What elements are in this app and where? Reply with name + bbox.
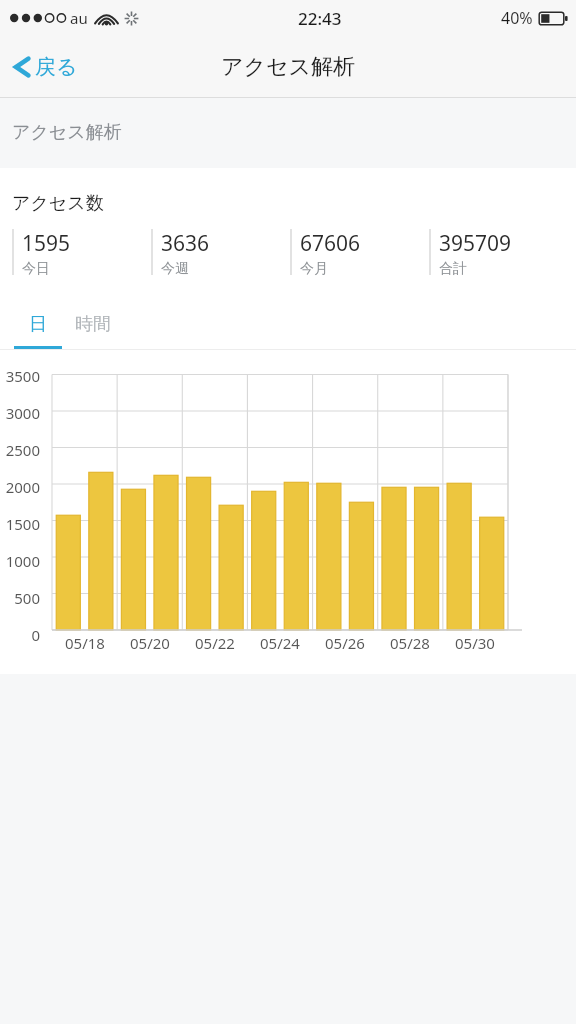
button[interactable]: 戻る xyxy=(8,46,82,88)
staticText: 500 xyxy=(0,588,40,608)
staticText: 3500 xyxy=(0,366,40,386)
staticText: 2000 xyxy=(0,477,40,497)
staticText: 日 xyxy=(29,313,47,336)
staticText: アクセス解析 xyxy=(221,53,356,81)
staticText: 1595 xyxy=(22,229,71,258)
staticText: 2500 xyxy=(0,440,40,460)
staticText: 05/22 xyxy=(195,633,235,653)
staticText: 05/30 xyxy=(455,633,495,653)
button[interactable]: 日 xyxy=(14,308,62,349)
staticText: 1500 xyxy=(0,514,40,534)
staticText: 22:43 xyxy=(298,7,342,30)
staticText: 395709 xyxy=(439,229,512,258)
staticText: 今日 xyxy=(22,260,50,278)
staticText: 合計 xyxy=(439,260,467,278)
staticText: 今月 xyxy=(300,260,328,278)
staticText: 0 xyxy=(0,625,40,645)
staticText: アクセス数 xyxy=(12,192,104,215)
staticText: 時間 xyxy=(75,313,111,336)
staticText: アクセス解析 xyxy=(12,121,122,144)
staticText: 40% xyxy=(501,7,533,29)
staticText: 05/28 xyxy=(390,633,430,653)
staticText: 05/20 xyxy=(130,633,170,653)
staticText: 3000 xyxy=(0,403,40,423)
staticText: 1000 xyxy=(0,551,40,571)
staticText: 67606 xyxy=(300,229,361,258)
staticText: 戻る xyxy=(35,54,78,80)
staticText: au xyxy=(70,8,88,28)
staticText: 05/26 xyxy=(325,633,365,653)
button[interactable]: 時間 xyxy=(62,308,124,349)
staticText: 05/18 xyxy=(65,633,105,653)
staticText: 今週 xyxy=(161,260,189,278)
staticText: 3636 xyxy=(161,229,210,258)
staticText: 05/24 xyxy=(260,633,300,653)
